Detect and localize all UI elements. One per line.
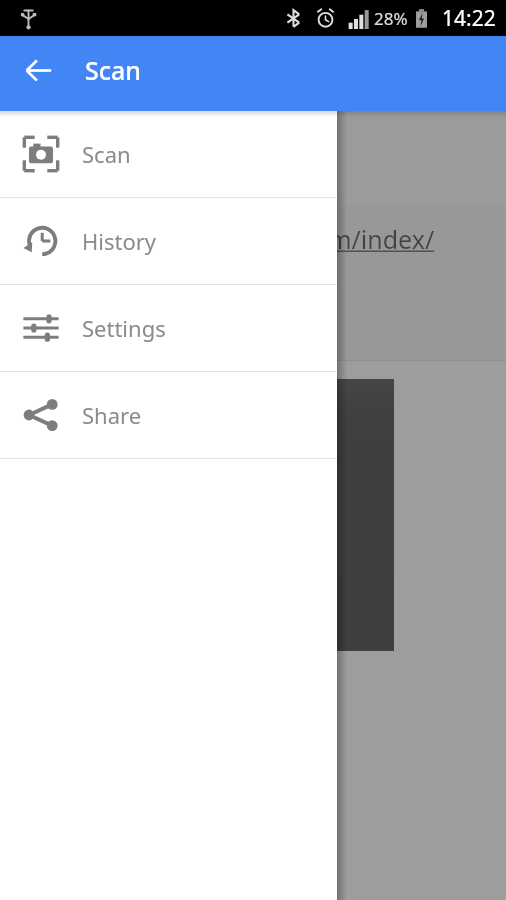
staticText: 28%	[374, 7, 408, 30]
staticText: http://example.com/index/	[120, 222, 435, 256]
button[interactable]: Settings	[0, 285, 337, 371]
staticText: History	[82, 226, 157, 256]
button[interactable]: http://example.com/index/	[0, 206, 506, 360]
staticText: 14:22	[442, 4, 496, 33]
button[interactable]: Share	[0, 372, 337, 458]
staticText: Scan	[82, 139, 131, 169]
staticText: Settings	[82, 313, 166, 343]
staticText: Scan	[85, 53, 142, 87]
button[interactable]: Scan	[0, 111, 337, 197]
button[interactable]: Back	[10, 42, 66, 98]
button[interactable]: History	[0, 198, 337, 284]
staticText: Share	[82, 400, 142, 430]
